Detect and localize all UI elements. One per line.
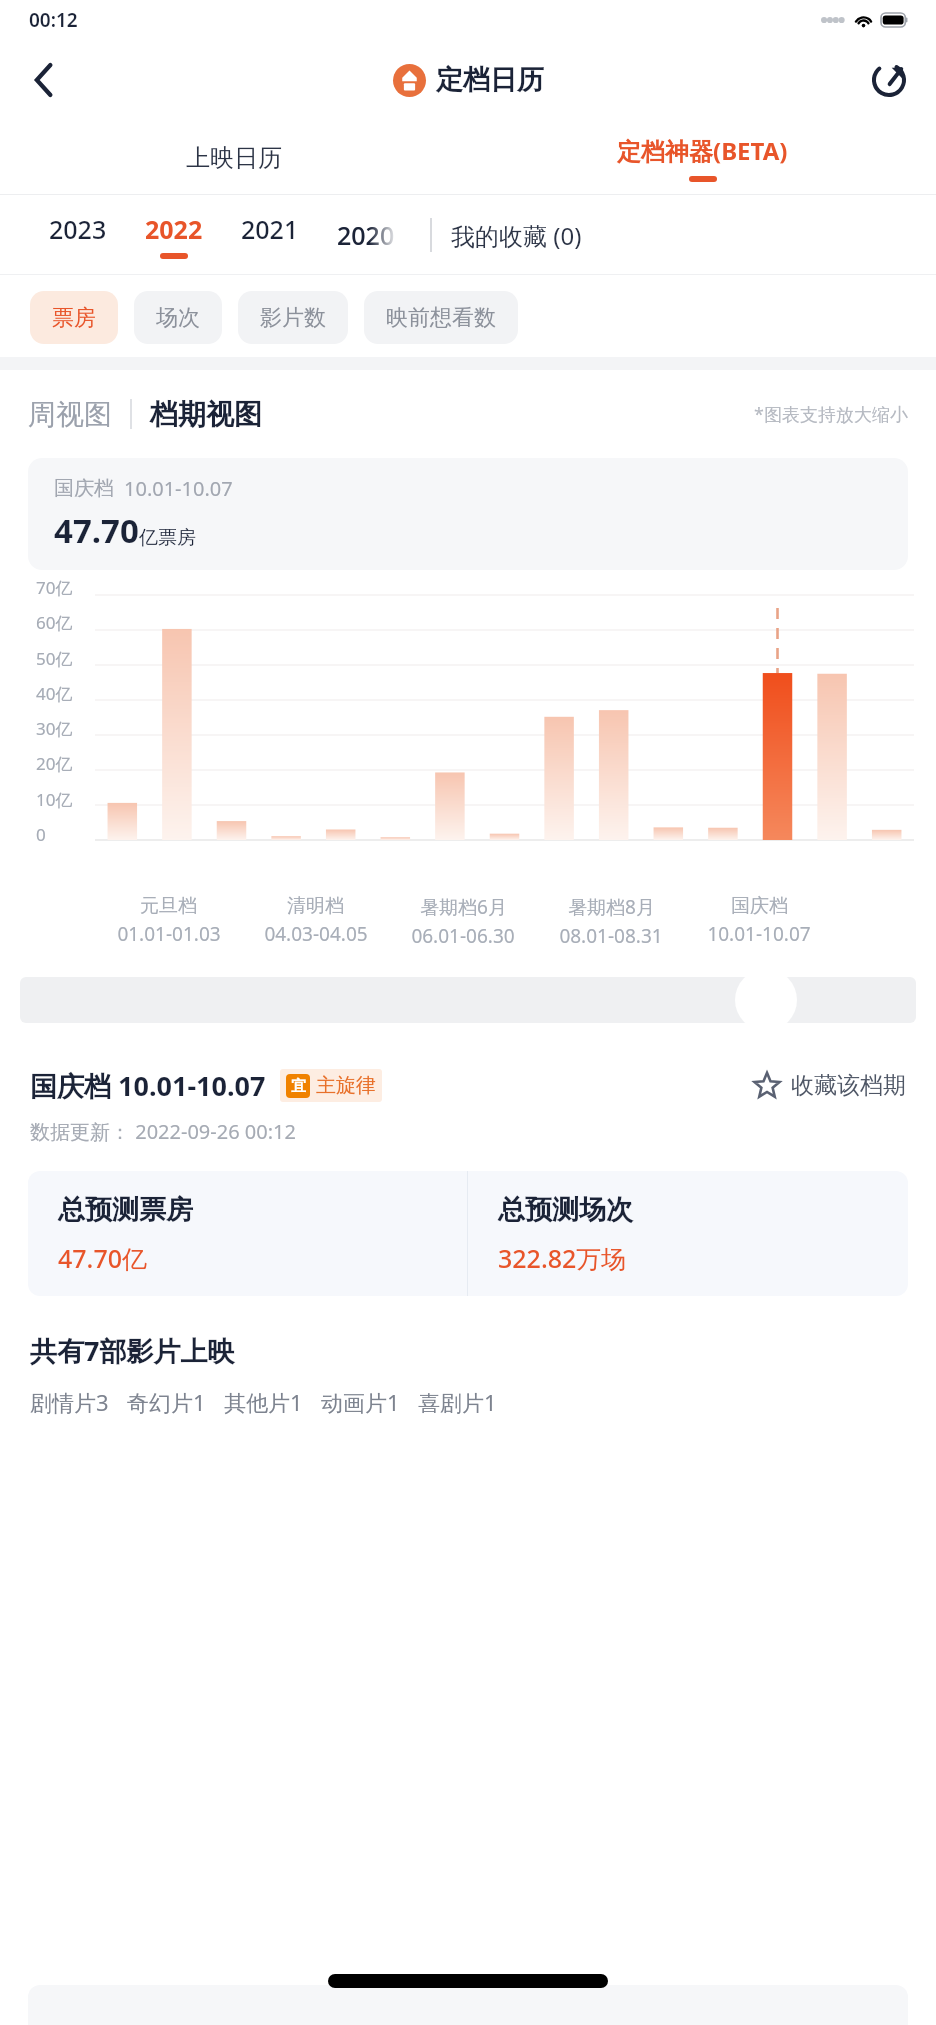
staticText: 10.01-10.07 [124,475,233,502]
staticText: 场次 [156,304,200,332]
staticText: 暑期档8月 [568,894,655,920]
button[interactable]: 周视图 [28,397,112,432]
staticText: 2020 [337,218,395,252]
staticText: 收藏该档期 [791,1071,906,1100]
staticText: 国庆档 [54,476,114,501]
button[interactable]: 2022 [126,195,222,275]
staticText: 01.01-01.03 [117,921,221,947]
button[interactable]: 收藏该档期 [753,1071,906,1100]
staticText: 70亿 [36,576,73,599]
staticText: 亿票房 [139,526,196,550]
staticText: 主旋律 [316,1073,376,1098]
staticText: 影片数 [260,304,326,332]
button[interactable]: 国庆档 [28,458,908,570]
staticText: 2021 [241,212,299,246]
button[interactable]: 我的收藏 (0) [451,219,582,252]
staticText: 数据更新： 2022-09-26 00:12 [30,1118,296,1145]
staticText: 2023 [49,212,107,246]
staticText: 档期视图 [150,397,262,432]
button[interactable]: 映前想看数 [364,291,518,344]
staticText: *图表支持放大缩小 [754,402,908,427]
staticText: 我的收藏 (0) [451,219,582,252]
staticText: 其他片1 [224,1387,303,1417]
staticText: 共有7部影片上映 [30,1332,235,1369]
button[interactable]: 定档神器(BETA) [468,120,936,195]
staticText: 30亿 [36,717,73,740]
staticText: 宜 [291,1077,306,1096]
staticText: 04.03-04.05 [264,921,368,947]
button[interactable]: 2021 [222,195,318,275]
staticText: 喜剧片1 [418,1387,497,1417]
staticText: 10亿 [36,788,73,811]
button[interactable]: 档期视图 [150,397,262,432]
button[interactable]: 票房 [30,291,118,344]
staticText: 50亿 [36,647,73,670]
staticText: 00:12 [29,7,78,33]
staticText: 国庆档 10.01-10.07 [30,1067,266,1104]
button[interactable]: Share [862,53,916,107]
button[interactable]: Back [18,54,70,106]
staticText: 10.01-10.07 [707,921,811,947]
staticText: 定档神器(BETA) [617,134,788,167]
button[interactable]: 上映日历 [0,120,468,195]
staticText: 清明档 [287,894,344,918]
staticText: 总预测票房 [58,1193,193,1227]
button[interactable]: 影片数 [238,291,348,344]
staticText: 定档日历 [436,63,544,97]
staticText: 国庆档 [731,894,788,918]
button[interactable]: 2020 [337,218,395,252]
staticText: 40亿 [36,682,73,705]
button[interactable]: Range handle [735,969,797,1031]
staticText: 暑期档6月 [420,894,507,920]
staticText: 47.70亿 [58,1241,148,1275]
button[interactable]: 场次 [134,291,222,344]
staticText: 06.01-06.30 [411,923,515,949]
staticText: 0 [36,823,46,846]
staticText: 总预测场次 [498,1193,633,1227]
staticText: 上映日历 [186,143,282,173]
staticText: 动画片1 [321,1387,400,1417]
staticText: 20亿 [36,752,73,775]
staticText: 剧情片3 [30,1387,109,1417]
staticText: 60亿 [36,611,73,634]
staticText: 322.82万场 [498,1241,627,1275]
staticText: 47.70 [54,508,139,553]
staticText: 08.01-08.31 [559,923,663,949]
staticText: 奇幻片1 [127,1387,206,1417]
staticText: 票房 [52,304,96,332]
button[interactable]: 总预测场次 [468,1171,908,1296]
button[interactable]: 总预测票房 [28,1171,467,1296]
staticText: 元旦档 [140,894,197,918]
staticText: 2022 [145,212,203,246]
staticText: 映前想看数 [386,304,496,332]
button[interactable]: 2023 [30,195,126,275]
staticText: 周视图 [28,397,112,432]
button[interactable]: 定档日历 [393,63,544,97]
